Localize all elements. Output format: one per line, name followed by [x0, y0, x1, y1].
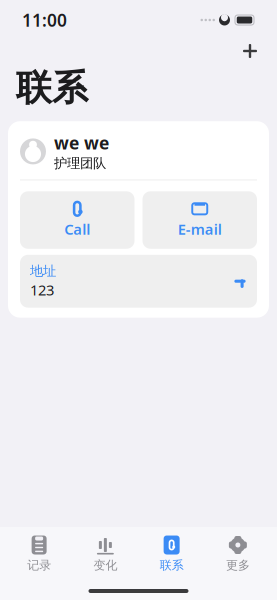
staticText: we we [54, 131, 109, 154]
staticText: E-mail [178, 219, 222, 239]
staticText: 11:00 [22, 8, 67, 31]
button[interactable]: 更多 [205, 535, 271, 573]
staticText: Call [64, 219, 90, 239]
button[interactable]: Call [20, 191, 134, 249]
button[interactable]: E-mail [142, 191, 257, 249]
button[interactable]: 联系 [138, 535, 205, 573]
staticText: 联系 [16, 66, 88, 110]
button[interactable]: 记录 [6, 535, 72, 573]
button[interactable]: Add contact [237, 38, 263, 64]
button[interactable]: 变化 [72, 535, 138, 573]
staticText: 护理团队 [54, 155, 106, 172]
staticText: 123 [30, 280, 54, 300]
button[interactable]: 地址 [20, 255, 257, 308]
staticText: 地址 [30, 263, 56, 279]
staticText: 变化 [93, 558, 117, 573]
staticText: 联系 [160, 558, 184, 573]
staticText: 更多 [226, 558, 250, 573]
staticText: 记录 [27, 558, 51, 573]
